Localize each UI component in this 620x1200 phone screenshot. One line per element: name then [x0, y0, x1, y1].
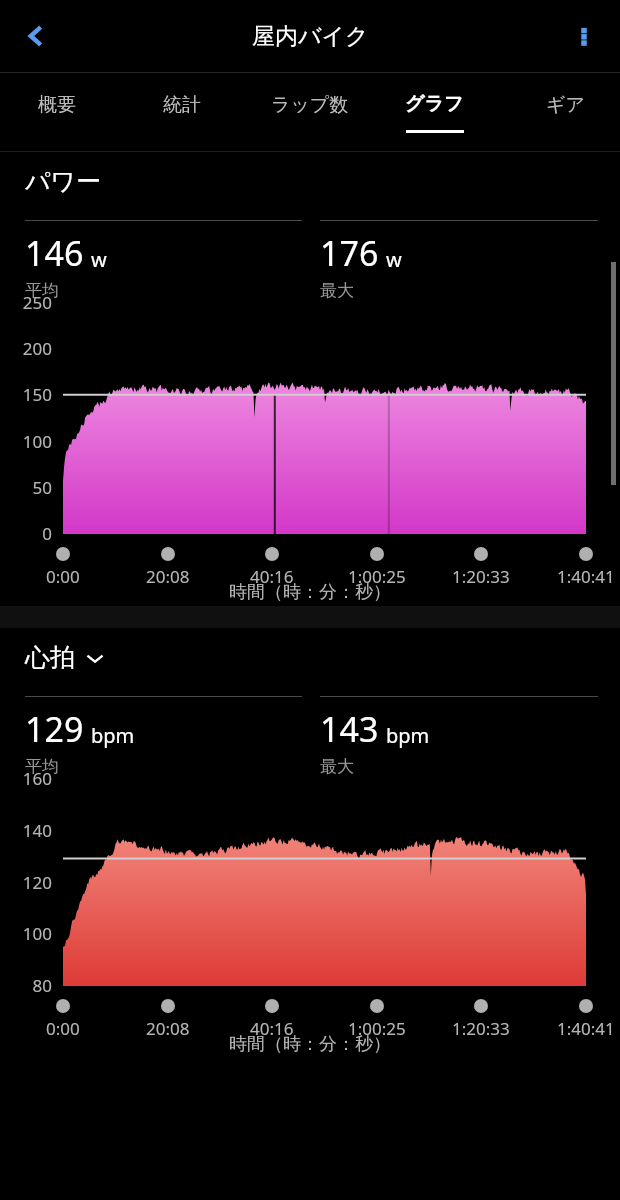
staticText: 146 — [25, 230, 84, 276]
button[interactable]: More options — [556, 8, 612, 64]
button[interactable]: ギア — [517, 73, 613, 151]
staticText: 平均 — [25, 280, 59, 301]
staticText: 200 — [22, 337, 52, 360]
staticText: bpm — [386, 722, 430, 749]
staticText: 40:16 — [250, 565, 294, 588]
staticText: w — [386, 246, 402, 273]
button[interactable]: ラップ数 — [250, 73, 370, 151]
staticText: ギア — [546, 93, 585, 117]
staticText: 0:00 — [46, 1017, 80, 1040]
staticText: 100 — [22, 430, 52, 453]
staticText: 50 — [32, 476, 52, 499]
staticText: ラップ数 — [271, 93, 349, 117]
staticText: 150 — [22, 383, 52, 406]
staticText: 120 — [22, 871, 52, 894]
staticText: 143 — [320, 706, 379, 752]
staticText: 1:20:33 — [452, 1017, 510, 1040]
staticText: 1:00:25 — [348, 1017, 406, 1040]
staticText: 129 — [25, 706, 84, 752]
staticText: 心拍 — [25, 642, 75, 673]
staticText: グラフ — [405, 92, 464, 116]
staticText: w — [91, 246, 107, 273]
staticText: 160 — [22, 767, 52, 790]
staticText: 80 — [32, 974, 52, 997]
button[interactable]: Back — [8, 8, 64, 64]
button[interactable]: 心拍 — [25, 642, 105, 673]
staticText: 統計 — [163, 93, 201, 117]
staticText: bpm — [91, 722, 135, 749]
button[interactable]: 概要 — [9, 73, 105, 151]
staticText: 250 — [22, 291, 52, 314]
staticText: 0 — [42, 522, 52, 545]
staticText: 176 — [320, 230, 379, 276]
staticText: 時間（時：分：秒） — [229, 1033, 391, 1056]
staticText: 100 — [22, 922, 52, 945]
button[interactable]: パワー — [25, 166, 102, 197]
staticText: 1:40:41 — [557, 1017, 615, 1040]
staticText: 20:08 — [146, 1017, 190, 1040]
staticText: 140 — [22, 819, 52, 842]
staticText: 20:08 — [146, 565, 190, 588]
button[interactable]: グラフ — [386, 73, 482, 151]
staticText: 0:00 — [46, 565, 80, 588]
staticText: 1:00:25 — [348, 565, 406, 588]
staticText: 概要 — [38, 93, 76, 117]
staticText: 平均 — [25, 756, 59, 777]
button[interactable]: 統計 — [134, 73, 230, 151]
staticText: 最大 — [320, 280, 354, 301]
staticText: 1:40:41 — [557, 565, 615, 588]
staticText: 1:20:33 — [452, 565, 510, 588]
staticText: パワー — [25, 166, 102, 197]
staticText: 40:16 — [250, 1017, 294, 1040]
staticText: 時間（時：分：秒） — [229, 581, 391, 604]
staticText: 屋内バイク — [252, 22, 369, 51]
staticText: 最大 — [320, 756, 354, 777]
